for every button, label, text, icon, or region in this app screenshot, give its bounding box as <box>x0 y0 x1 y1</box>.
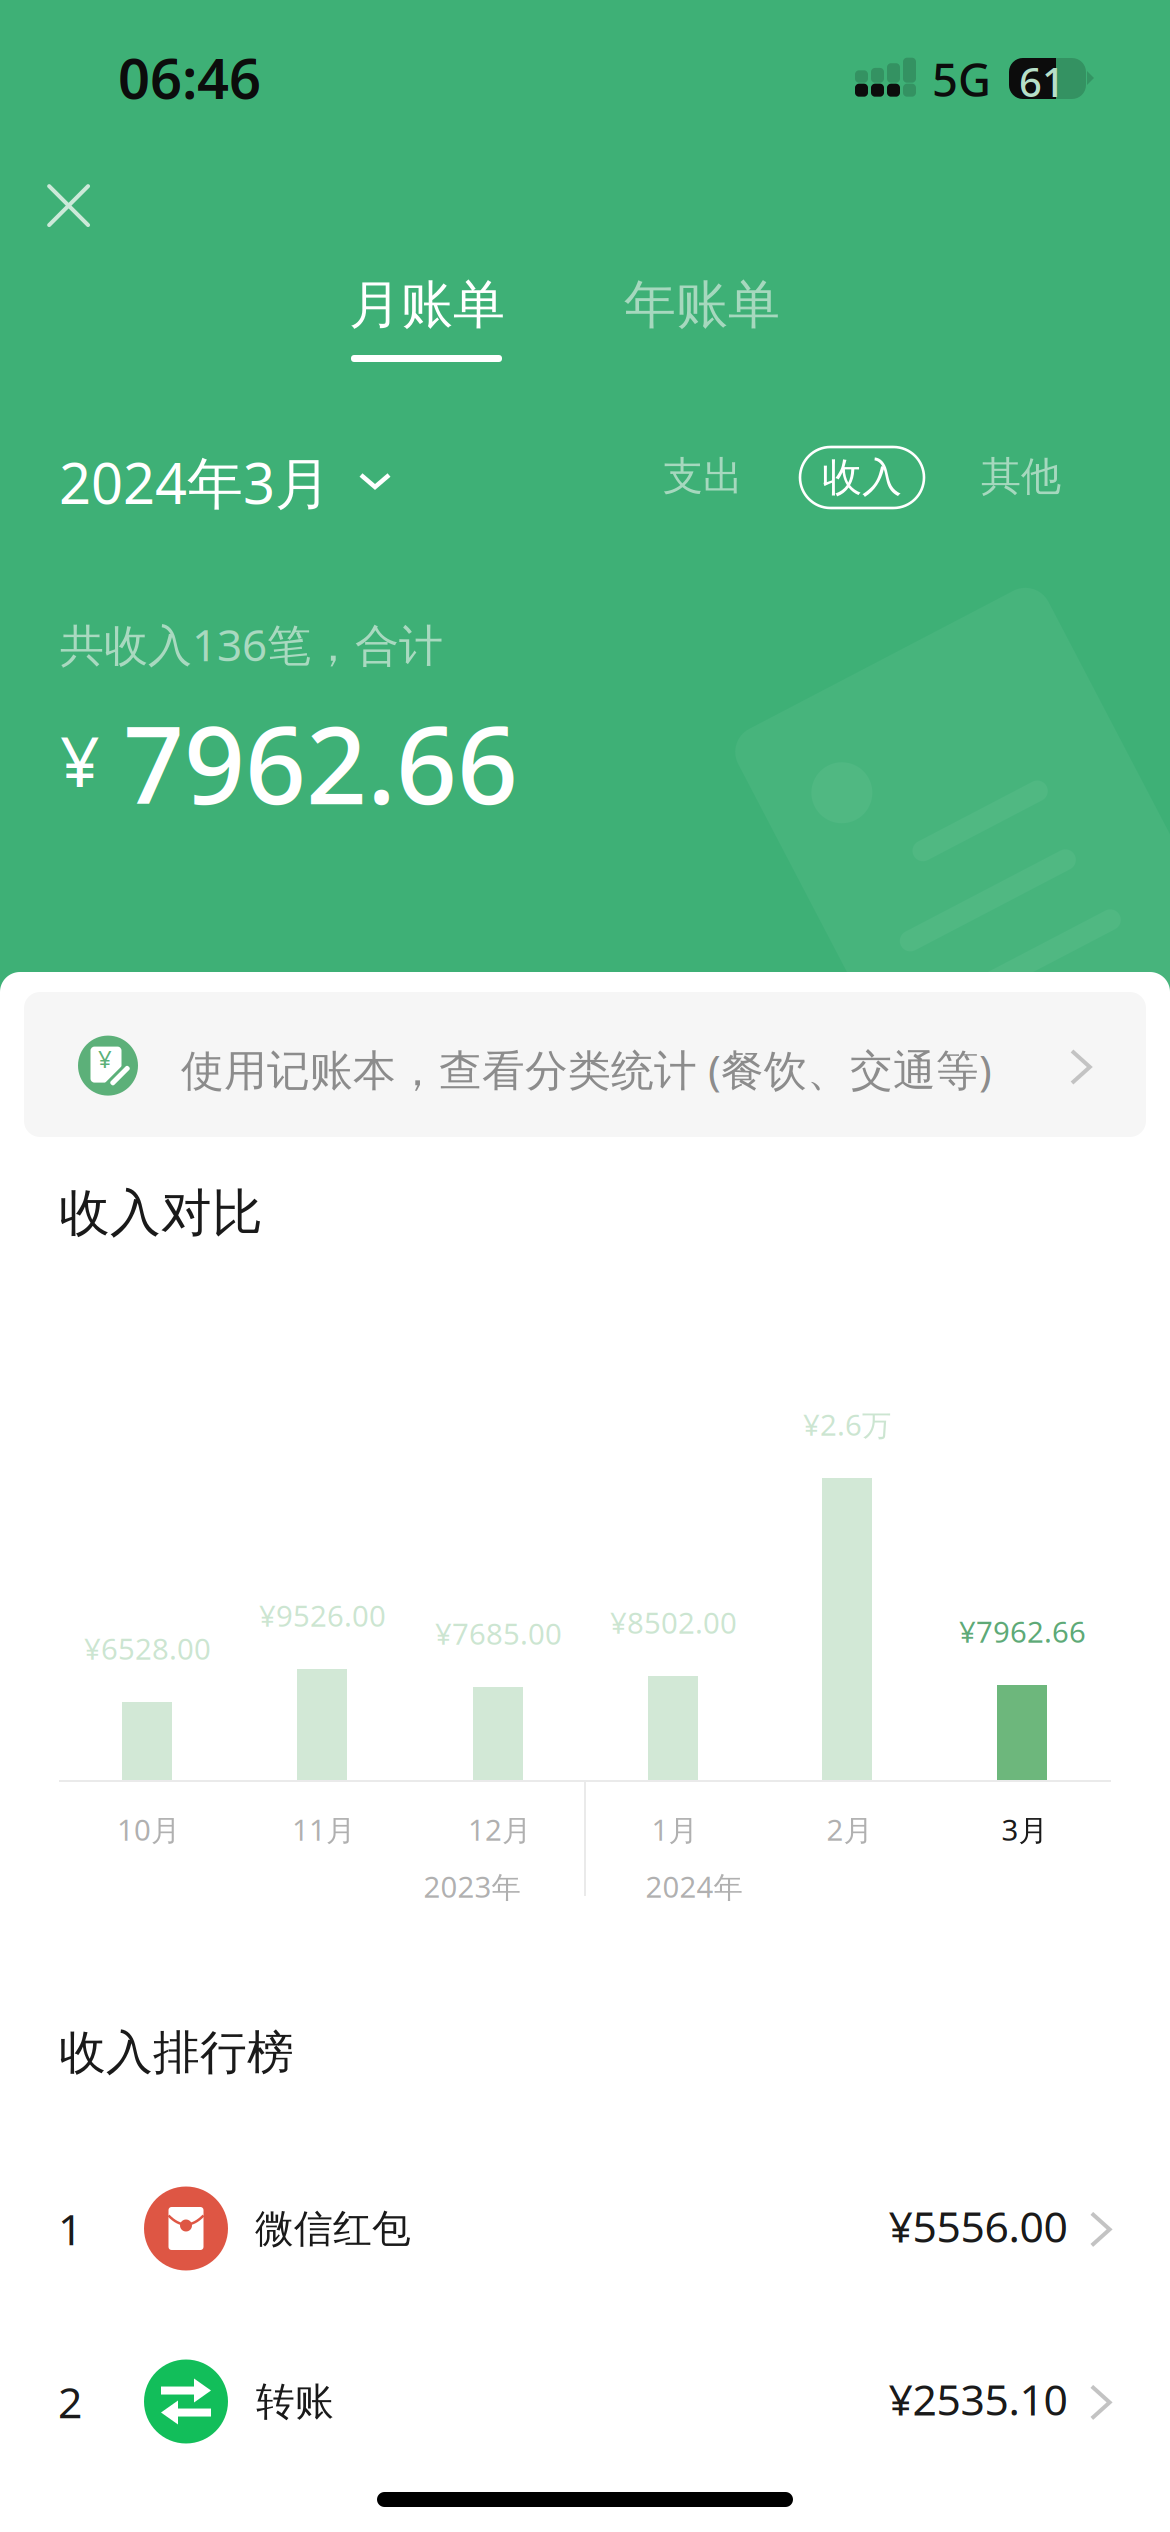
staticText: 月账单 <box>349 273 505 337</box>
staticText: 2024年 <box>645 1867 742 1906</box>
staticText: 1月 <box>651 1810 697 1849</box>
button[interactable]: 收入 <box>800 447 924 508</box>
staticText: 支出 <box>663 452 743 501</box>
button[interactable]: 年账单 <box>624 273 780 337</box>
staticText: ¥7685.00 <box>435 1614 562 1653</box>
button[interactable]: 月账单 <box>348 272 508 382</box>
staticText: 2 <box>58 2373 82 2430</box>
staticText: 2023年 <box>423 1867 520 1906</box>
staticText: 微信红包 <box>255 2205 411 2253</box>
staticText: ¥8502.00 <box>610 1603 737 1642</box>
staticText: 11月 <box>292 1810 355 1849</box>
staticText: ¥5556.00 <box>888 2197 1067 2254</box>
staticText: ¥2535.10 <box>888 2370 1067 2427</box>
staticText: 转账 <box>256 2378 334 2426</box>
staticText: 06:46 <box>118 40 261 114</box>
button[interactable]: 2024年3月 <box>59 445 399 525</box>
staticText: 5G <box>932 49 991 109</box>
staticText: ¥7962.66 <box>959 1612 1086 1651</box>
button[interactable]: 2 <box>0 2341 1170 2461</box>
staticText: ¥ <box>98 1043 112 1075</box>
staticText: ¥ <box>60 714 100 806</box>
staticText: ¥2.6万 <box>803 1405 891 1444</box>
staticText: 2024年3月 <box>59 445 331 519</box>
button[interactable]: 其他 <box>966 445 1076 508</box>
button[interactable]: Close <box>14 151 124 261</box>
staticText: 12月 <box>468 1810 531 1849</box>
button[interactable]: 支出 <box>648 445 758 508</box>
staticText: 10月 <box>117 1810 180 1849</box>
button[interactable]: ¥ <box>24 992 1146 1137</box>
staticText: 3月 <box>1001 1810 1047 1849</box>
staticText: 收入 <box>822 453 902 502</box>
button[interactable]: 1 <box>0 2168 1170 2288</box>
staticText: 7962.66 <box>123 692 518 834</box>
staticText: 其他 <box>981 452 1061 501</box>
staticText: 61 <box>1019 55 1065 108</box>
staticText: 年账单 <box>624 273 780 337</box>
staticText: 共收入136笔，合计 <box>60 615 443 673</box>
staticText: ¥6528.00 <box>84 1629 211 1668</box>
staticText: ¥9526.00 <box>259 1596 386 1635</box>
staticText: 收入对比 <box>59 1182 263 1244</box>
staticText: 使用记账本，查看分类统计 (餐饮、交通等) <box>181 1041 992 1098</box>
staticText: 1 <box>58 2200 82 2257</box>
staticText: 收入排行榜 <box>59 2024 294 2081</box>
staticText: 2月 <box>826 1810 872 1849</box>
